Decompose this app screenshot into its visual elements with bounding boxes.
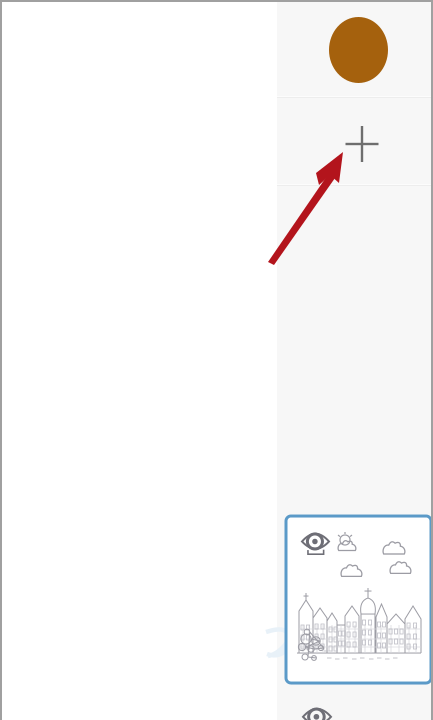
button[interactable]: Selected layer (286, 516, 431, 683)
button[interactable]: Current colour (277, 0, 433, 97)
button[interactable]: Toggle layer visibility (296, 703, 342, 720)
button[interactable]: Add layer (277, 98, 433, 186)
